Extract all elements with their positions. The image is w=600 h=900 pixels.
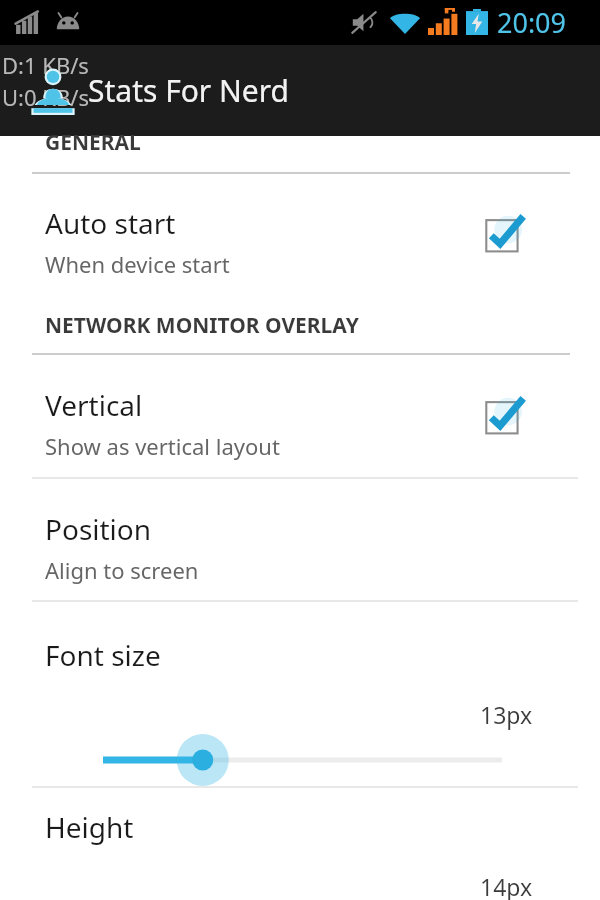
button[interactable]: Auto start checkbox, checked <box>478 204 536 262</box>
staticText: D:1 KB/s <box>2 50 89 80</box>
staticText: Position <box>45 510 152 548</box>
staticText: Align to screen <box>45 555 199 585</box>
staticText: When device start <box>45 249 230 279</box>
staticText: NETWORK MONITOR OVERLAY <box>45 311 359 340</box>
button[interactable]: App icon, navigate up <box>22 61 84 123</box>
staticText: 14px <box>480 871 533 900</box>
staticText: 13px <box>480 699 533 730</box>
staticText: Show as vertical layout <box>45 431 280 461</box>
staticText: GENERAL <box>45 128 141 157</box>
button[interactable]: Height <box>0 786 600 900</box>
staticText: Auto start <box>45 204 176 242</box>
button[interactable]: Auto start <box>0 186 600 294</box>
other: Font size, 13 pixels <box>0 724 600 786</box>
staticText: Stats For Nerd <box>88 70 289 111</box>
staticText: Vertical <box>45 386 143 424</box>
staticText: 20:09 <box>497 4 567 41</box>
button[interactable]: Vertical checkbox, checked <box>478 386 536 444</box>
staticText: Font size <box>45 636 161 674</box>
button[interactable]: Vertical <box>0 368 600 476</box>
staticText: Height <box>45 808 134 846</box>
staticText: U:0 KB/s <box>2 82 89 112</box>
button[interactable]: Position <box>0 492 600 600</box>
button[interactable]: Font size <box>0 614 600 786</box>
